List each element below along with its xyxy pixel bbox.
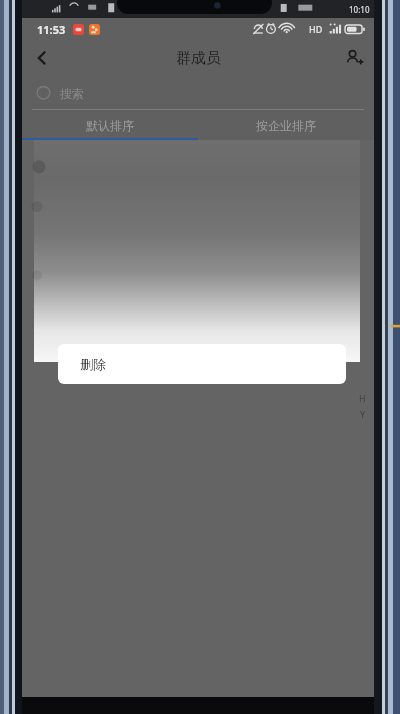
staticText: HD — [309, 23, 323, 35]
staticText: 群成员 — [176, 49, 221, 68]
staticText: 搜索 — [60, 86, 84, 101]
button[interactable]: H — [359, 392, 366, 420]
staticText: 11:53 — [37, 22, 66, 37]
button[interactable]: 默认排序 — [22, 110, 198, 140]
staticText: 10:10 — [349, 4, 370, 15]
staticText: 删除 — [80, 356, 106, 372]
button[interactable]: 删除 — [58, 344, 346, 384]
staticText: 按企业排序 — [256, 118, 316, 133]
staticText: 默认排序 — [86, 118, 134, 133]
staticText: Y — [360, 408, 366, 420]
staticText: H — [359, 392, 366, 404]
button[interactable]: Add member — [334, 40, 374, 76]
button[interactable]: 按企业排序 — [198, 110, 374, 140]
button[interactable]: Back — [22, 40, 62, 76]
button[interactable]: 搜索 — [22, 76, 374, 110]
